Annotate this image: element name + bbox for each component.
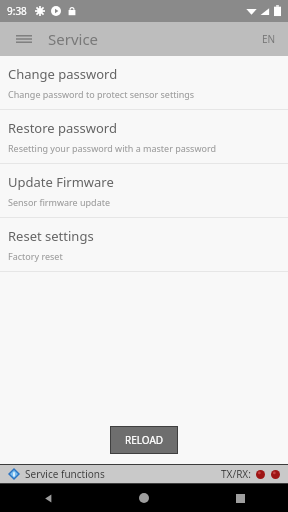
staticText: Resetting your password with a master pa… (8, 142, 217, 154)
staticText: Change password (8, 65, 118, 83)
staticText: 9:38 (7, 4, 27, 18)
button[interactable]: Open navigation menu (0, 22, 48, 56)
button[interactable]: Back (0, 484, 96, 512)
staticText: Service functions (25, 467, 105, 481)
staticText: Reset settings (8, 227, 94, 245)
staticText: Restore password (8, 119, 117, 137)
staticText: Service (48, 29, 99, 49)
button[interactable]: Change password (0, 56, 288, 110)
button[interactable]: RELOAD (110, 426, 178, 454)
staticText: Change password to protect sensor settin… (8, 88, 195, 100)
staticText: Factory reset (8, 250, 63, 262)
button[interactable]: Reset settings (0, 218, 288, 272)
button[interactable]: Update Firmware (0, 164, 288, 218)
staticText: TX/RX: (221, 467, 251, 481)
button[interactable]: Home (96, 484, 192, 512)
staticText: RELOAD (125, 433, 164, 447)
button[interactable]: Restore password (0, 110, 288, 164)
button[interactable]: EN (262, 22, 276, 56)
staticText: Sensor firmware update (8, 196, 111, 208)
staticText: Update Firmware (8, 173, 114, 191)
staticText: EN (262, 32, 276, 46)
button[interactable]: Recent apps (192, 484, 288, 512)
